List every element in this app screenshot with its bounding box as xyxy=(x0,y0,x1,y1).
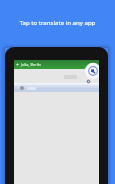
button[interactable]: Translate xyxy=(83,61,99,81)
other: Back xyxy=(16,63,19,66)
staticText: Julia, Berlin xyxy=(21,62,41,67)
button[interactable] xyxy=(14,83,99,92)
button[interactable]: Back xyxy=(14,60,99,69)
staticText: Tap to translate in any app xyxy=(0,18,115,26)
